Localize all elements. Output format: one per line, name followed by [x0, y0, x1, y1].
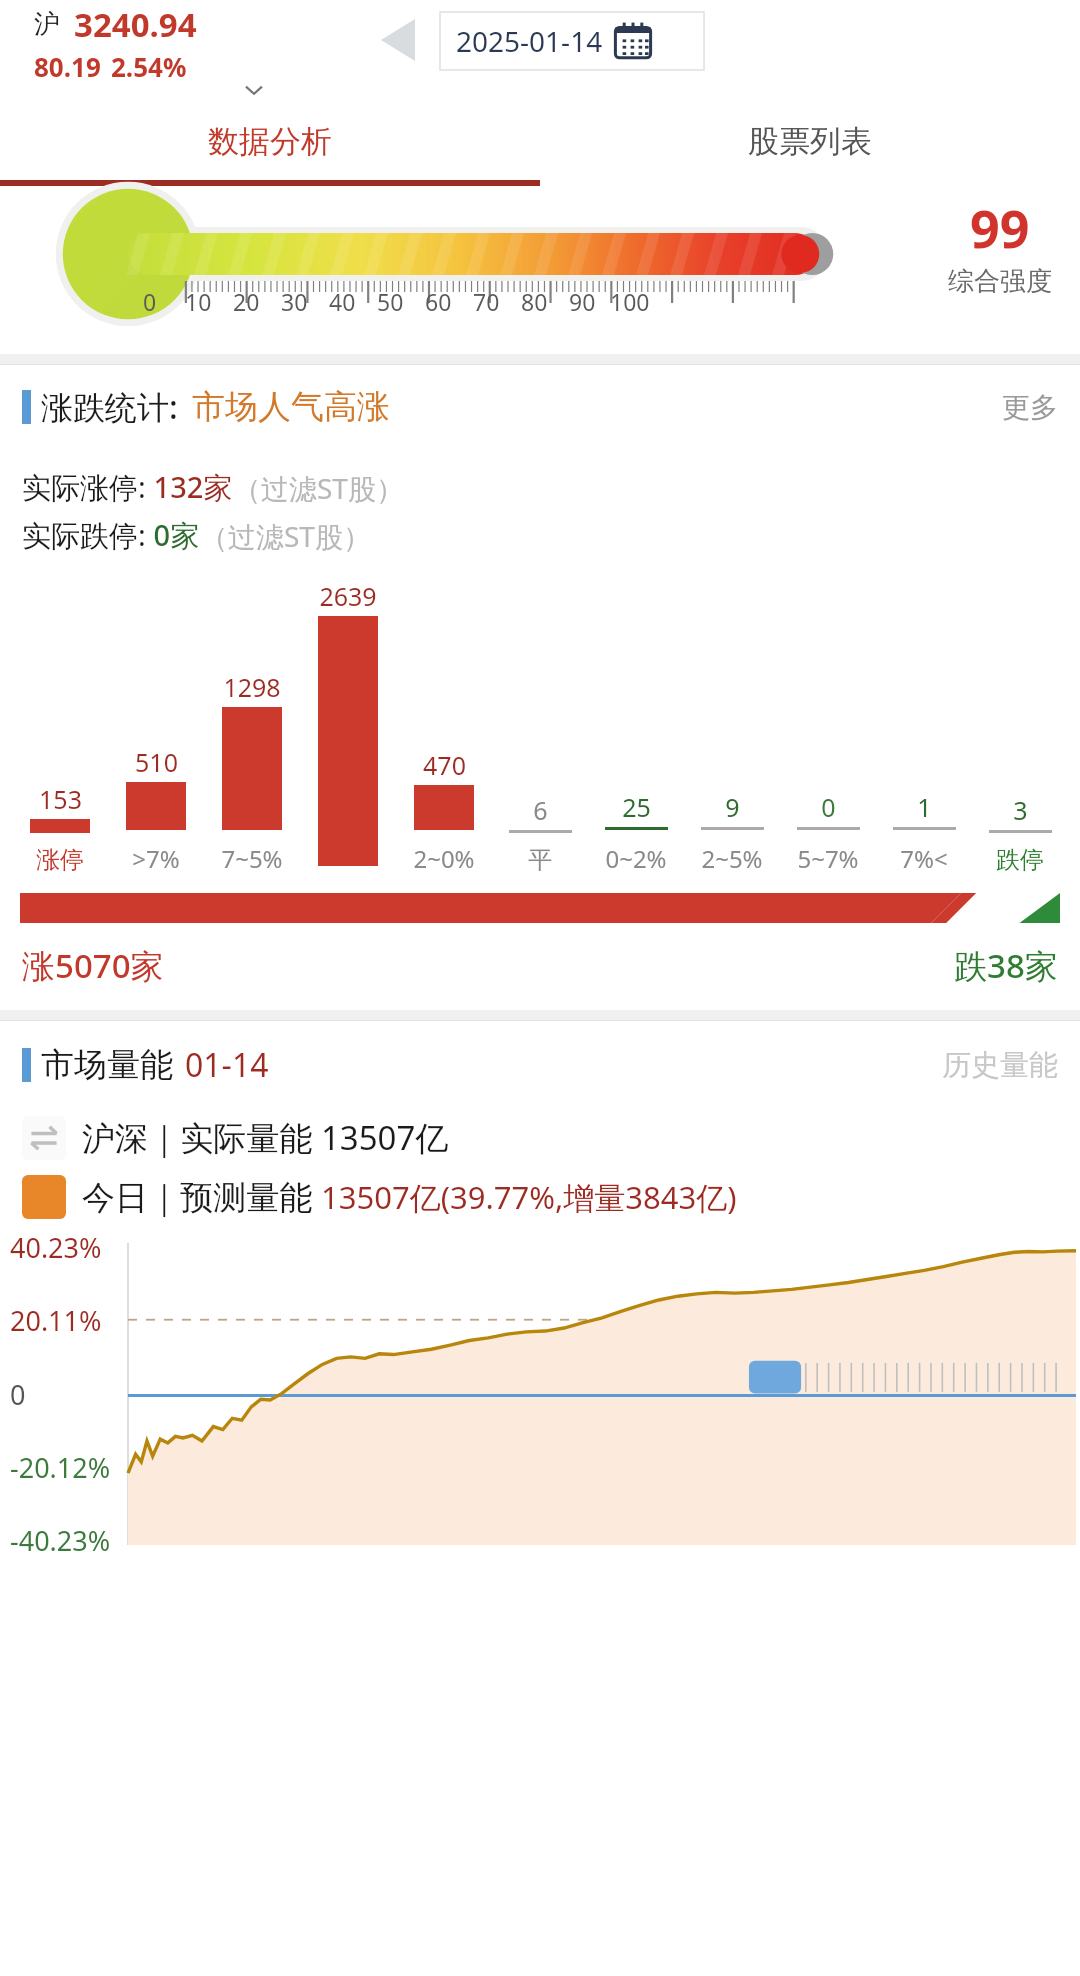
staticText: -20.12% — [10, 1449, 111, 1486]
staticText: 3 — [1013, 793, 1028, 827]
staticText: 153 — [39, 782, 82, 816]
button[interactable]: 2025-01-14 — [440, 12, 704, 70]
staticText: 涨停 — [36, 845, 84, 875]
staticText: 25 — [622, 790, 651, 824]
staticText: 80 — [521, 286, 548, 317]
button[interactable]: 市场量能 — [22, 1043, 1058, 1087]
staticText: 历史量能 — [942, 1047, 1058, 1084]
staticText: 2~0% — [413, 842, 475, 875]
staticText: 沪深｜实际量能 13507亿 — [82, 1115, 449, 1160]
staticText: >7% — [132, 842, 180, 875]
staticText: （过滤ST股） — [233, 469, 404, 507]
staticText: 0家 — [146, 515, 200, 555]
staticText: 100 — [610, 286, 650, 317]
button[interactable]: 涨跌统计: — [22, 385, 1058, 429]
staticText: 90 — [569, 286, 596, 317]
button[interactable]: 股票列表 — [540, 102, 1080, 180]
staticText: 50 — [377, 286, 404, 317]
staticText: 沪 — [34, 8, 60, 41]
staticText: 510 — [135, 745, 178, 779]
staticText: 股票列表 — [748, 122, 872, 161]
staticText: 3240.94 — [74, 2, 197, 47]
staticText: 今日｜预测量能 — [82, 1174, 321, 1219]
staticText: 数据分析 — [208, 122, 332, 161]
staticText: 13507亿(39.77%,增量3843亿) — [321, 1176, 737, 1218]
staticText: -40.23% — [10, 1522, 111, 1559]
staticText: 实际跌停: — [22, 515, 146, 555]
button[interactable]: Previous day — [374, 14, 422, 66]
staticText: 70 — [473, 286, 500, 317]
staticText: 0~2% — [605, 842, 667, 875]
staticText: 市场量能 — [41, 1044, 173, 1086]
staticText: 市场人气高涨 — [192, 386, 390, 428]
staticText: 更多 — [1002, 390, 1058, 425]
staticText: 2.54% — [111, 49, 187, 84]
staticText: 0 — [143, 286, 157, 317]
staticText: 综合强度 — [948, 265, 1052, 298]
staticText: 实际涨停: — [22, 467, 146, 507]
staticText: 2639 — [319, 579, 377, 613]
staticText: 30 — [281, 286, 308, 317]
staticText: 60 — [425, 286, 452, 317]
staticText: 2~5% — [701, 842, 763, 875]
button[interactable]: 数据分析 — [0, 102, 540, 180]
staticText: 6 — [533, 793, 548, 827]
staticText: 涨5070家 — [22, 943, 164, 988]
staticText: （过滤ST股） — [200, 517, 371, 555]
staticText: 80.19 — [34, 49, 101, 84]
staticText: 7~5% — [221, 842, 283, 875]
staticText: 01-14 — [185, 1043, 269, 1087]
staticText: 470 — [423, 748, 466, 782]
staticText: 0 — [821, 790, 836, 824]
staticText: 10 — [185, 286, 212, 317]
staticText: 0 — [10, 1376, 26, 1413]
staticText: 2025-01-14 — [456, 22, 603, 60]
staticText: 40.23% — [10, 1229, 102, 1266]
staticText: 99 — [970, 192, 1030, 263]
staticText: 跌停 — [996, 845, 1044, 875]
staticText: 132家 — [146, 467, 233, 507]
staticText: 5~7% — [797, 842, 859, 875]
staticText: 涨跌统计: — [41, 385, 178, 429]
staticText: 20.11% — [10, 1302, 102, 1339]
staticText: 40 — [329, 286, 356, 317]
staticText: 7%< — [900, 842, 948, 875]
staticText: 1 — [917, 790, 932, 824]
staticText: 9 — [725, 790, 740, 824]
staticText: 平 — [528, 845, 552, 875]
staticText: 20 — [233, 286, 260, 317]
staticText: 跌38家 — [954, 943, 1058, 988]
staticText: 1298 — [223, 670, 281, 704]
